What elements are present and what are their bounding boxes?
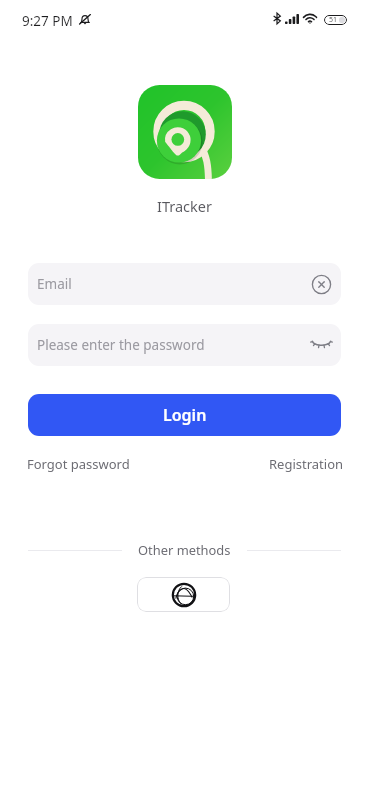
staticText: ITracker — [157, 196, 212, 216]
button[interactable]: Email — [28, 263, 341, 305]
button[interactable]: Login — [28, 394, 341, 436]
button[interactable]: Sign in with third party account — [137, 577, 230, 612]
staticText: Email — [37, 275, 72, 293]
button[interactable]: Please enter the password — [28, 324, 341, 366]
staticText: 51 — [329, 15, 338, 25]
button[interactable]: Registration — [269, 455, 344, 473]
staticText: Login — [163, 404, 207, 426]
staticText: 9:27 PM — [22, 12, 73, 30]
staticText: Registration — [269, 455, 344, 473]
staticText: Please enter the password — [37, 336, 205, 354]
staticText: Forgot password — [27, 455, 130, 473]
staticText: Other methods — [138, 541, 231, 559]
button[interactable]: Forgot password — [27, 455, 130, 473]
